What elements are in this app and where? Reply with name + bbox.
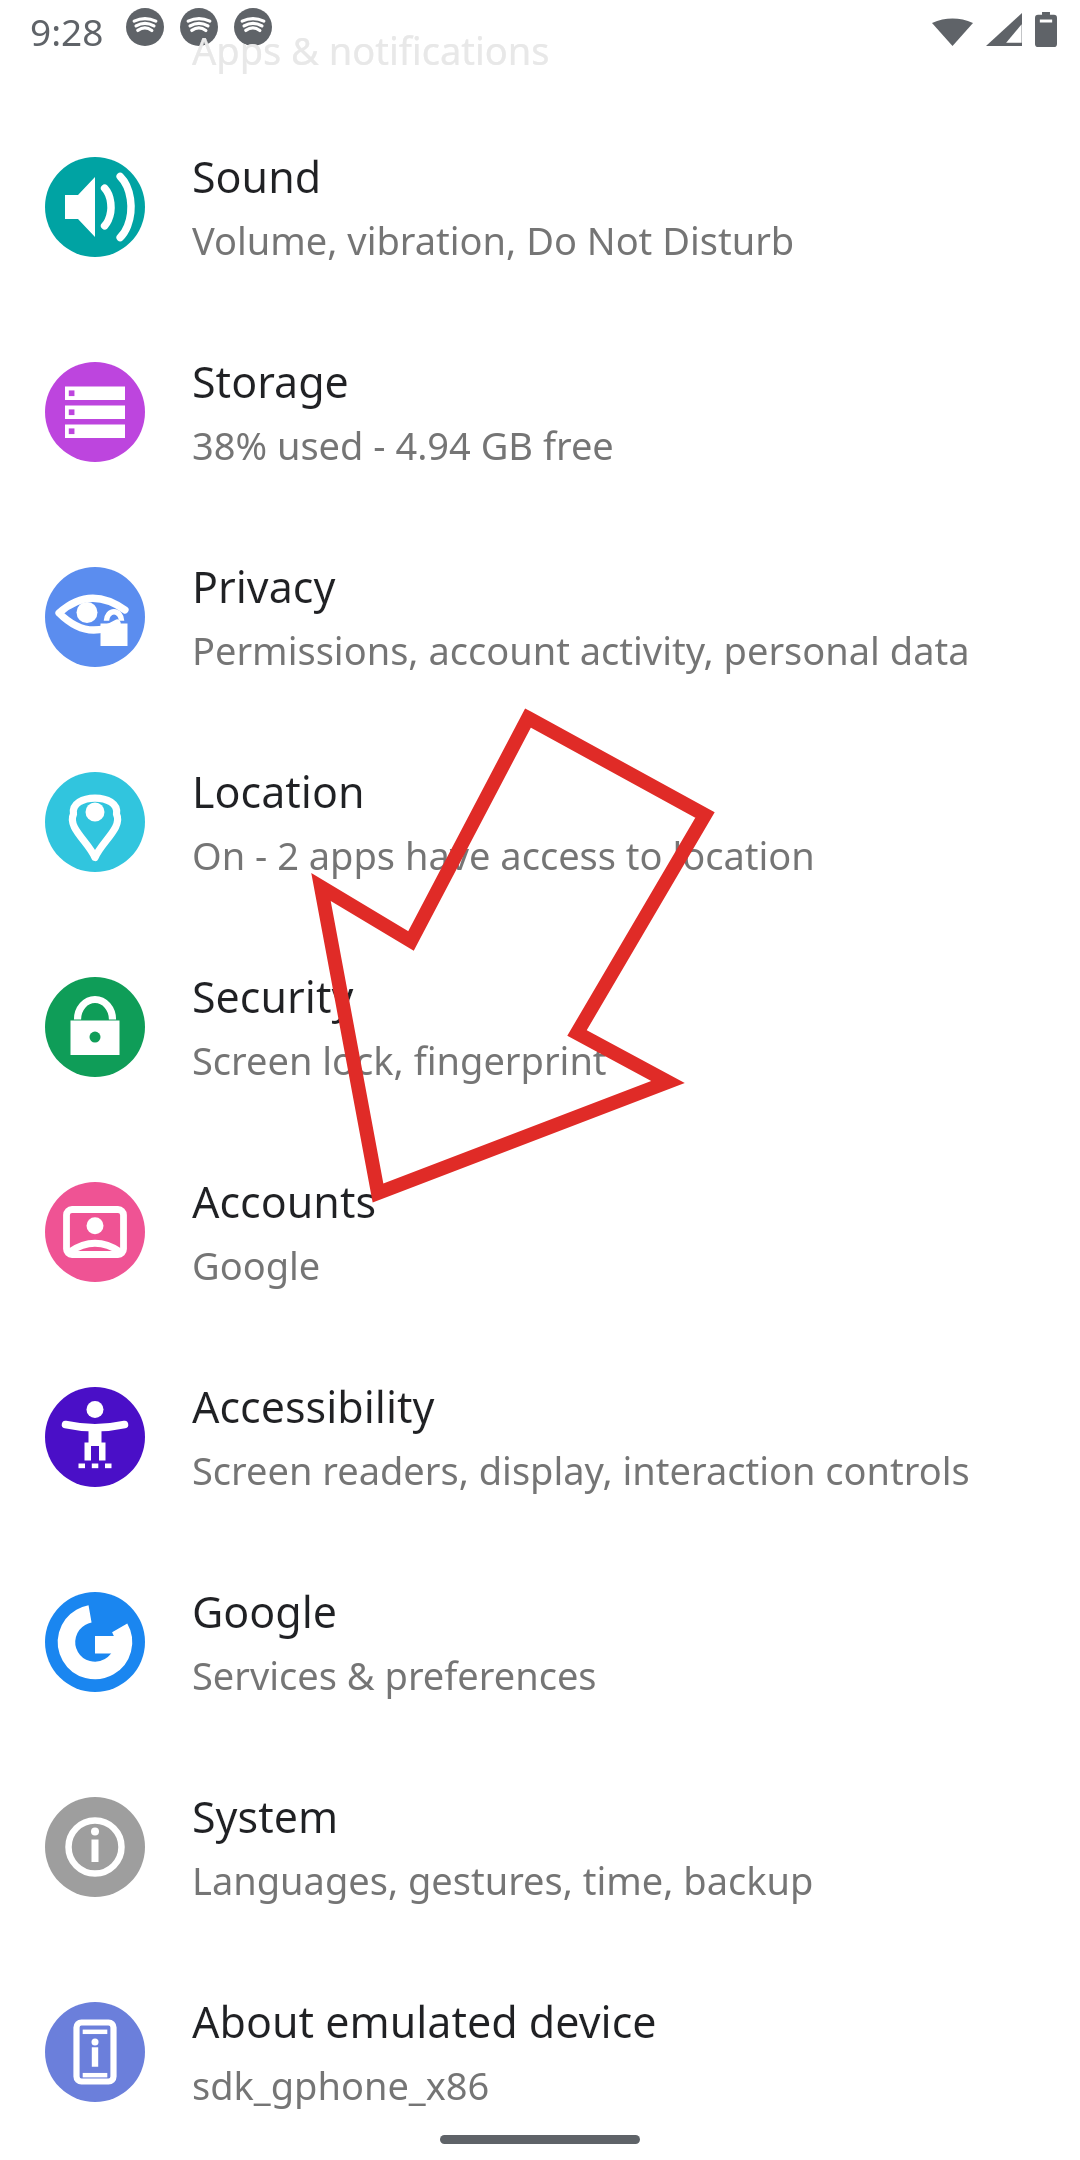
button[interactable]: Privacy — [0, 514, 1080, 719]
button[interactable]: Accounts — [0, 1129, 1080, 1334]
staticText: Google — [192, 1582, 338, 1641]
staticText: 9:28 — [30, 6, 104, 56]
staticText: 38% used - 4.94 GB free — [192, 419, 614, 471]
staticText: Storage — [192, 352, 349, 411]
staticText: System — [192, 1787, 339, 1846]
staticText: Apps & notifications — [192, 24, 550, 76]
staticText: Security — [192, 967, 354, 1026]
button[interactable]: Storage — [0, 309, 1080, 514]
staticText: sdk_gphone_x86 — [192, 2059, 490, 2111]
staticText: Screen lock, fingerprint — [192, 1034, 607, 1086]
staticText: Accounts — [192, 1172, 377, 1231]
button[interactable]: About emulated device — [0, 1949, 1080, 2154]
staticText: Screen readers, display, interaction con… — [192, 1444, 970, 1496]
staticText: Privacy — [192, 557, 336, 616]
staticText: Volume, vibration, Do Not Disturb — [192, 214, 795, 266]
button[interactable]: Security — [0, 924, 1080, 1129]
staticText: Google — [192, 1239, 321, 1291]
staticText: Services & preferences — [192, 1649, 597, 1701]
button[interactable]: Location — [0, 719, 1080, 924]
staticText: Languages, gestures, time, backup — [192, 1854, 814, 1906]
staticText: Sound — [192, 147, 322, 206]
staticText: Accessibility — [192, 1377, 435, 1436]
staticText: On - 2 apps have access to location — [192, 829, 815, 881]
button[interactable]: Sound — [0, 104, 1080, 309]
staticText: Location — [192, 762, 365, 821]
staticText: Permissions, account activity, personal … — [192, 624, 970, 676]
button[interactable]: System — [0, 1744, 1080, 1949]
button[interactable]: Accessibility — [0, 1334, 1080, 1539]
staticText: About emulated device — [192, 1992, 657, 2051]
button[interactable]: Google — [0, 1539, 1080, 1744]
